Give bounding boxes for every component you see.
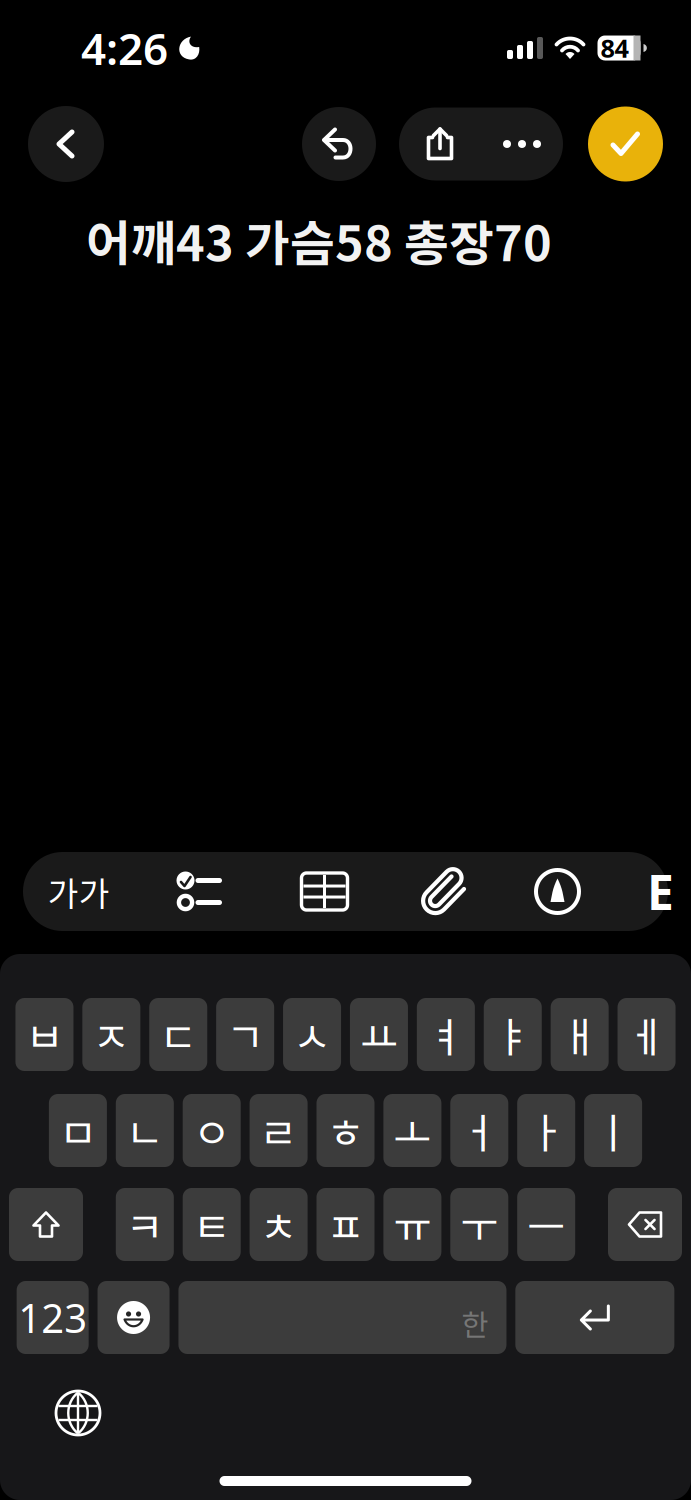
staticText: ㅍ (326, 1195, 364, 1254)
staticText: ㅡ (527, 1195, 565, 1254)
button[interactable]: ㅜ (450, 1188, 508, 1261)
staticText: ㅓ (460, 1101, 498, 1160)
staticText: E (647, 860, 674, 923)
button[interactable]: ㅣ (584, 1094, 642, 1167)
button[interactable]: ㅁ (49, 1094, 107, 1167)
staticText: ㄴ (126, 1101, 164, 1160)
button[interactable]: Switch keyboard (52, 1387, 104, 1439)
staticText: ㅌ (193, 1195, 231, 1254)
staticText: ㄱ (226, 1005, 264, 1064)
button[interactable]: ㅋ (116, 1188, 174, 1261)
staticText: 123 (18, 1291, 87, 1344)
button[interactable]: ㄷ (149, 998, 207, 1071)
staticText: ㅈ (92, 1005, 130, 1064)
button[interactable]: ㅛ (350, 998, 408, 1071)
button[interactable]: Markup (529, 852, 585, 931)
button[interactable]: ㅐ (551, 998, 609, 1071)
button[interactable]: Space (178, 1281, 506, 1354)
button[interactable]: Attach (416, 852, 472, 931)
button[interactable]: ㅡ (517, 1188, 575, 1261)
button[interactable]: Emoji (97, 1281, 169, 1354)
button[interactable]: ㅎ (316, 1094, 374, 1167)
staticText: ㅎ (326, 1101, 364, 1160)
staticText: 한 (461, 1302, 488, 1344)
button[interactable]: ㅈ (82, 998, 140, 1071)
button[interactable]: Share (399, 107, 481, 180)
button[interactable]: ㅂ (15, 998, 73, 1071)
button[interactable]: ㅏ (517, 1094, 575, 1167)
staticText: ㅑ (494, 1005, 532, 1064)
button[interactable]: ㅍ (316, 1188, 374, 1261)
button[interactable]: More (481, 107, 563, 180)
button[interactable]: Back (28, 106, 104, 182)
button[interactable]: ㅠ (383, 1188, 441, 1261)
button[interactable]: More formatting (649, 852, 671, 931)
staticText: ㄷ (159, 1005, 197, 1064)
button[interactable]: ㅔ (617, 998, 675, 1071)
button[interactable]: 가가 (48, 852, 108, 931)
button[interactable]: Delete (608, 1188, 682, 1261)
button[interactable]: Return (515, 1281, 674, 1354)
staticText: ㅜ (460, 1195, 498, 1254)
button[interactable]: Done (588, 106, 663, 181)
staticText: ㅇ (193, 1101, 231, 1160)
button[interactable]: ㅊ (250, 1188, 308, 1261)
button[interactable]: Undo (302, 107, 376, 181)
staticText: ㅐ (561, 1005, 599, 1064)
button[interactable]: Shift (9, 1188, 83, 1261)
button[interactable]: ㄹ (250, 1094, 308, 1167)
staticText: 어깨43 가슴58 총장70 (86, 205, 552, 275)
button[interactable]: ㄱ (216, 998, 274, 1071)
staticText: ㅛ (360, 1005, 398, 1064)
staticText: 84 (600, 31, 628, 65)
staticText: ㅏ (527, 1101, 565, 1160)
staticText: ㅠ (393, 1195, 431, 1254)
staticText: ㅅ (293, 1005, 331, 1064)
button[interactable]: ㅌ (183, 1188, 241, 1261)
button[interactable]: ㅗ (383, 1094, 441, 1167)
staticText: ㅔ (627, 1005, 665, 1064)
button[interactable]: ㅅ (283, 998, 341, 1071)
button[interactable]: ㅕ (417, 998, 475, 1071)
button[interactable]: ㄴ (116, 1094, 174, 1167)
button[interactable]: ㅇ (183, 1094, 241, 1167)
button[interactable]: ㅓ (450, 1094, 508, 1167)
button[interactable]: Table (296, 852, 352, 931)
staticText: ㅋ (126, 1195, 164, 1254)
staticText: ㅕ (427, 1005, 465, 1064)
staticText: ㄹ (260, 1101, 298, 1160)
staticText: 4:26 (81, 19, 168, 77)
button[interactable]: ㅑ (484, 998, 542, 1071)
staticText: ㅂ (25, 1005, 63, 1064)
button[interactable]: Checklist (170, 852, 226, 931)
staticText: ㅁ (59, 1101, 97, 1160)
staticText: ㅊ (260, 1195, 298, 1254)
button[interactable]: Numbers (17, 1281, 89, 1354)
staticText: ㅣ (594, 1101, 632, 1160)
staticText: 가가 (47, 867, 109, 916)
staticText: ㅗ (393, 1101, 431, 1160)
